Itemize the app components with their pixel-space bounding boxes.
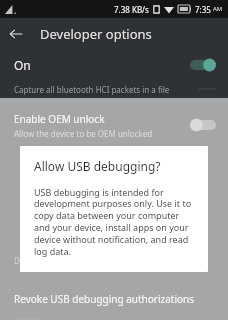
button[interactable]: Enable OEM unlock (0, 108, 228, 142)
staticText: AM (213, 5, 223, 13)
staticText: USB debugging is intended for developmen… (34, 186, 196, 258)
staticText: Revoke USB debugging authorizations (14, 292, 195, 306)
staticText: Capture all bluetooth HCI packets in a f… (14, 84, 170, 95)
staticText: Allow USB debugging? (34, 158, 161, 174)
staticText: Enable OEM unlock (14, 112, 105, 126)
button[interactable]: On (0, 50, 228, 80)
button[interactable]: Back (0, 18, 32, 50)
staticText: Allow the device to be OEM unlocked (14, 128, 153, 139)
staticText: 7.38 KB/s (114, 4, 149, 15)
button[interactable]: Revoke USB debugging authorizations (0, 286, 228, 312)
button[interactable]: Debug mode when USB is connected (0, 252, 228, 268)
staticText: Developer options (40, 25, 152, 43)
staticText: Debug mode when USB is connected (14, 255, 153, 266)
button[interactable]: Capture all bluetooth HCI packets in a f… (0, 80, 228, 98)
staticText: 7:35 (195, 4, 211, 15)
staticText: On (14, 57, 31, 73)
